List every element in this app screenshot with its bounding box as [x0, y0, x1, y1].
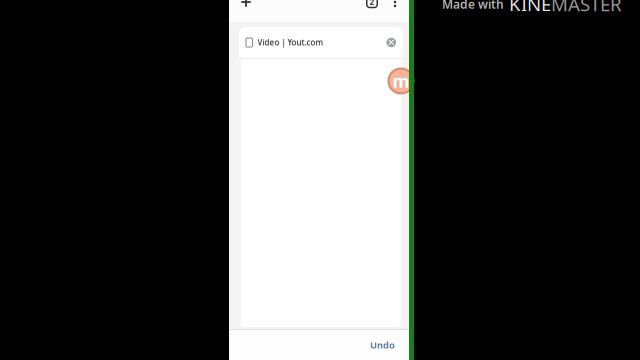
button[interactable]: Close tab [386, 38, 396, 47]
staticText: Made with [442, 0, 504, 12]
staticText: m [392, 69, 409, 92]
button[interactable]: Open tabs [362, 0, 382, 22]
staticText: Video | Yout.com [257, 37, 323, 48]
button[interactable]: More options [388, 0, 402, 22]
staticText: 2 [369, 0, 374, 7]
staticText: ✕ [387, 37, 395, 48]
staticText: MASTER [551, 0, 622, 16]
button[interactable]: Undo [367, 334, 398, 356]
button[interactable]: New tab [236, 0, 256, 22]
staticText: KINE [509, 0, 551, 16]
staticText: Undo [370, 339, 395, 351]
